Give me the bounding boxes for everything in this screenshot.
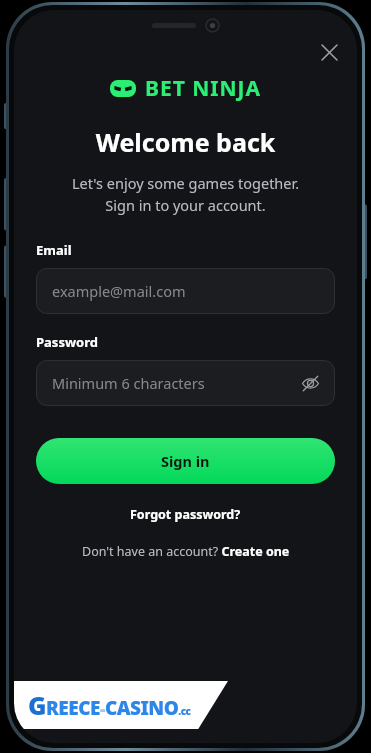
staticText: BET NINJA: [145, 74, 262, 103]
button[interactable]: Don't have an account? Create one: [36, 543, 335, 560]
staticText: Password: [36, 333, 98, 351]
button[interactable]: Close: [315, 40, 343, 64]
staticText: Forgot password?: [130, 506, 241, 523]
button[interactable]: Sign in: [36, 438, 335, 484]
staticText: Sign in: [161, 451, 210, 471]
staticText: Email: [36, 241, 72, 259]
button[interactable]: Show password: [295, 368, 325, 398]
staticText: GREECE-CASINO.cc: [28, 688, 191, 722]
button[interactable]: Minimum 6 characters: [36, 360, 335, 406]
button[interactable]: Forgot password?: [36, 506, 335, 523]
staticText: Don't have an account? Create one: [82, 543, 290, 560]
staticText: Let's enjoy some games together. Sign in…: [30, 173, 341, 215]
staticText: Minimum 6 characters: [52, 373, 205, 393]
button[interactable]: example@mail.com: [36, 268, 335, 314]
staticText: Welcome back: [14, 125, 357, 159]
staticText: example@mail.com: [52, 281, 186, 301]
